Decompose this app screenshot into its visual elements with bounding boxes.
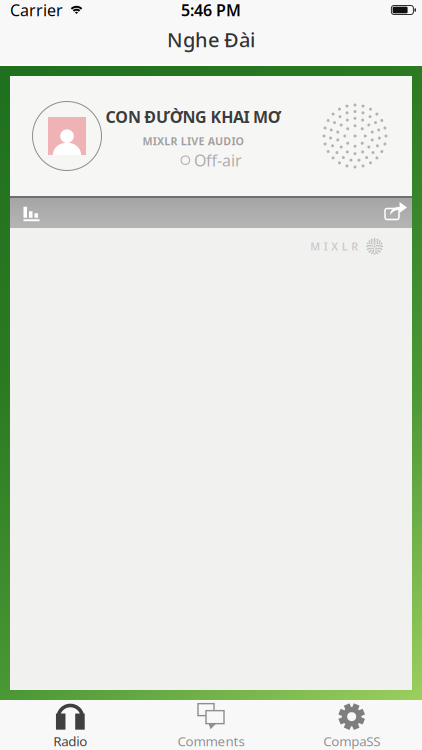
- button[interactable]: Radio: [0, 698, 141, 750]
- staticText: Nghe Đài: [167, 26, 255, 53]
- staticText: Off-air: [194, 150, 242, 171]
- staticText: MIXLR: [310, 239, 358, 253]
- staticText: MIXLR LIVE AUDIO: [143, 134, 244, 148]
- staticText: CompaSS: [323, 732, 380, 750]
- staticText: CON ĐƯỜNG KHAI MƠ: [105, 106, 281, 127]
- staticText: 5:46 PM: [181, 0, 241, 21]
- button[interactable]: Share: [382, 204, 412, 222]
- staticText: Comments: [177, 732, 244, 750]
- staticText: Radio: [53, 732, 87, 750]
- button[interactable]: Stats: [10, 206, 39, 220]
- button[interactable]: CompaSS: [281, 698, 422, 750]
- staticText: Carrier: [10, 0, 63, 21]
- button[interactable]: Comments: [141, 698, 281, 750]
